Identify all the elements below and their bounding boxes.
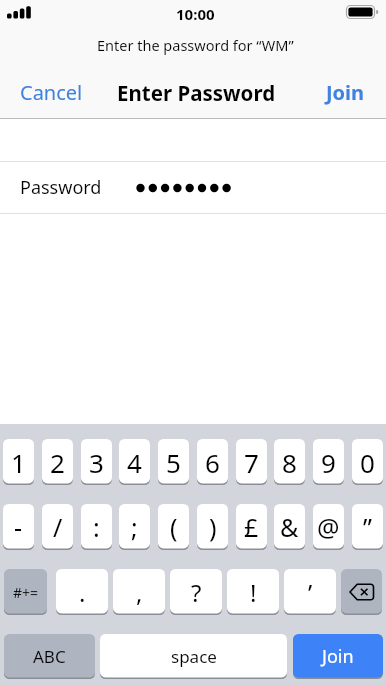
button[interactable]: 1 bbox=[3, 439, 34, 485]
button[interactable]: ” bbox=[352, 504, 383, 550]
staticText: & bbox=[280, 510, 299, 544]
button[interactable]: ? bbox=[170, 569, 222, 615]
staticText: £ bbox=[244, 510, 259, 544]
staticText: ABC bbox=[33, 645, 66, 668]
button[interactable]: 4 bbox=[119, 439, 150, 485]
staticText: Enter the password for “WM” bbox=[97, 35, 294, 55]
button[interactable]: Join bbox=[326, 79, 365, 106]
staticText: / bbox=[53, 510, 63, 544]
staticText: 4 bbox=[127, 445, 142, 480]
button[interactable]: : bbox=[81, 504, 112, 550]
staticText: ’ bbox=[308, 576, 313, 609]
button[interactable]: space bbox=[100, 634, 287, 679]
button[interactable] bbox=[341, 569, 382, 615]
button[interactable]: 0 bbox=[352, 439, 383, 485]
staticText: ; bbox=[131, 510, 138, 544]
staticText: - bbox=[14, 510, 23, 544]
button[interactable]: 7 bbox=[236, 439, 267, 485]
staticText: 10:00 bbox=[176, 4, 215, 24]
button[interactable]: 2 bbox=[42, 439, 73, 485]
button[interactable]: 9 bbox=[313, 439, 344, 485]
button[interactable]: @ bbox=[313, 504, 344, 550]
staticText: Password bbox=[20, 175, 102, 200]
button[interactable]: ) bbox=[197, 504, 228, 550]
button[interactable]: ; bbox=[119, 504, 150, 550]
staticText: 7 bbox=[244, 445, 259, 480]
button[interactable]: Password bbox=[0, 162, 386, 213]
button[interactable]: - bbox=[3, 504, 34, 550]
staticText: 5 bbox=[166, 445, 181, 480]
staticText: ” bbox=[363, 510, 372, 544]
staticText: . bbox=[79, 576, 86, 609]
staticText: #+= bbox=[13, 583, 39, 602]
button[interactable]: ’ bbox=[284, 569, 336, 615]
staticText: 2 bbox=[50, 445, 65, 480]
button[interactable]: & bbox=[274, 504, 305, 550]
staticText: Join bbox=[322, 644, 354, 669]
button[interactable]: ABC bbox=[4, 634, 95, 679]
button[interactable]: ! bbox=[227, 569, 279, 615]
button[interactable]: / bbox=[42, 504, 73, 550]
staticText: ? bbox=[191, 576, 202, 609]
staticText: , bbox=[136, 576, 143, 609]
button[interactable]: 6 bbox=[197, 439, 228, 485]
staticText: ! bbox=[250, 576, 257, 609]
staticText: 8 bbox=[282, 445, 297, 480]
button[interactable]: #+= bbox=[4, 569, 47, 615]
staticText: 9 bbox=[321, 445, 336, 480]
button[interactable]: ( bbox=[158, 504, 189, 550]
button[interactable]: Join bbox=[293, 634, 383, 679]
staticText: space bbox=[171, 645, 217, 668]
button[interactable]: , bbox=[113, 569, 165, 615]
staticText: 3 bbox=[89, 445, 104, 480]
button[interactable]: 8 bbox=[274, 439, 305, 485]
staticText: ) bbox=[209, 510, 217, 544]
staticText: 0 bbox=[360, 445, 375, 480]
button[interactable]: . bbox=[56, 569, 108, 615]
staticText: 6 bbox=[205, 445, 220, 480]
button[interactable]: £ bbox=[236, 504, 267, 550]
staticText: @ bbox=[317, 510, 340, 544]
staticText: ( bbox=[170, 510, 178, 544]
staticText: 1 bbox=[11, 445, 26, 480]
button[interactable]: 3 bbox=[81, 439, 112, 485]
button[interactable]: 5 bbox=[158, 439, 189, 485]
button[interactable]: Cancel bbox=[20, 79, 83, 106]
staticText: : bbox=[93, 510, 100, 544]
staticText: Enter Password bbox=[117, 79, 276, 107]
